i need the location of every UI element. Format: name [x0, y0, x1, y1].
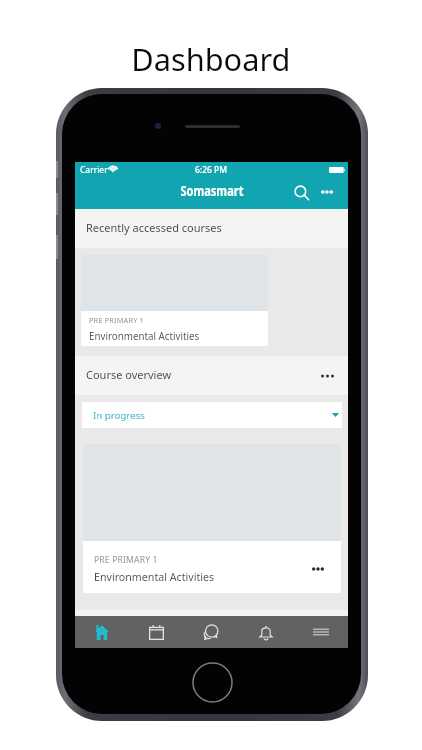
staticText: PRE PRIMARY 1 [89, 315, 144, 325]
button[interactable]: PRE PRIMARY 1 [83, 444, 341, 593]
button[interactable]: Search [288, 179, 316, 207]
staticText: In progress [93, 409, 145, 422]
button[interactable]: PRE PRIMARY 1 [81, 255, 268, 346]
button[interactable]: In progress [82, 402, 342, 428]
button[interactable]: Recently accessed courses [75, 209, 348, 248]
button[interactable]: Home [75, 616, 129, 648]
button[interactable]: More options [312, 179, 342, 205]
staticText: Course overview [86, 367, 172, 383]
staticText: Environmental Activities [94, 569, 215, 584]
staticText: Dashboard [131, 38, 291, 80]
button[interactable]: Notifications [238, 616, 293, 648]
staticText: PRE PRIMARY 1 [94, 554, 158, 566]
button[interactable]: Course overview [75, 356, 348, 395]
staticText: Somasmart [180, 181, 244, 200]
button[interactable]: Course actions [303, 556, 333, 582]
staticText: Environmental Activities [89, 329, 199, 343]
staticText: Carrier [80, 164, 108, 176]
staticText: Recently accessed courses [86, 220, 222, 236]
staticText: 6:26 PM [195, 164, 228, 176]
button[interactable]: Messages [183, 616, 238, 648]
button[interactable]: Course overview options [318, 361, 348, 391]
button[interactable]: Menu [293, 616, 348, 648]
button[interactable]: Calendar [129, 616, 183, 648]
